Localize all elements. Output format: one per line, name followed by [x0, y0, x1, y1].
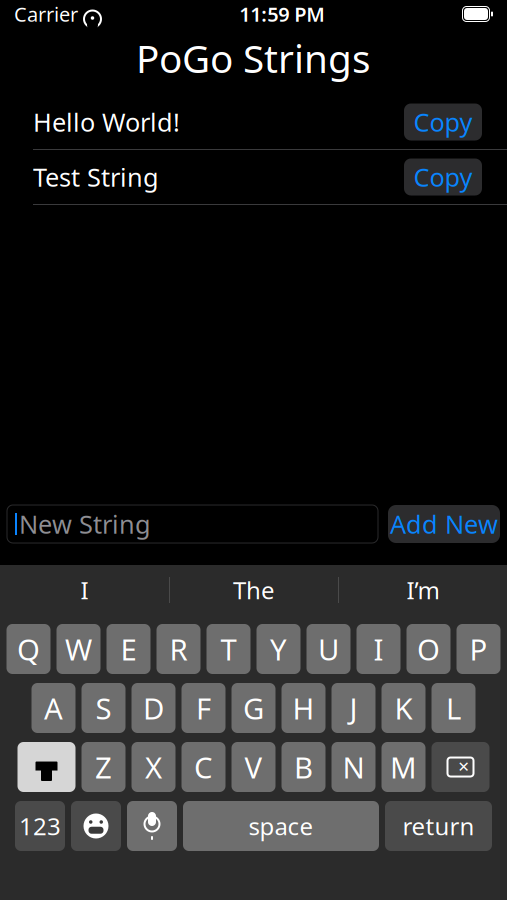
button[interactable]: T: [206, 624, 250, 674]
button[interactable]: P: [456, 624, 500, 674]
button[interactable]: A: [31, 683, 75, 733]
button[interactable]: Copy: [404, 103, 482, 140]
staticText: New String: [19, 507, 151, 541]
staticText: The: [233, 574, 275, 606]
staticText: G: [243, 688, 264, 727]
staticText: 123: [19, 810, 61, 842]
button[interactable]: F: [181, 683, 225, 733]
button[interactable]: Emoji: [71, 801, 121, 851]
staticText: Test String: [33, 160, 159, 194]
button[interactable]: X: [131, 742, 175, 792]
button[interactable]: V: [231, 742, 275, 792]
staticText: O: [417, 629, 440, 668]
button[interactable]: G: [231, 683, 275, 733]
button[interactable]: L: [431, 683, 475, 733]
button[interactable]: Shift: [17, 742, 75, 792]
button[interactable]: I: [0, 565, 169, 615]
button[interactable]: Copy: [404, 158, 482, 195]
staticText: R: [169, 629, 187, 668]
staticText: PoGo Strings: [136, 32, 371, 84]
button[interactable]: K: [381, 683, 425, 733]
staticText: space: [248, 810, 313, 842]
staticText: Copy: [413, 105, 472, 139]
staticText: Add New: [390, 507, 498, 541]
button[interactable]: U: [306, 624, 350, 674]
staticText: M: [390, 747, 417, 786]
button[interactable]: Add New: [388, 505, 500, 543]
staticText: Hello World!: [33, 105, 180, 139]
staticText: return: [402, 810, 474, 842]
button[interactable]: Q: [6, 624, 50, 674]
button[interactable]: J: [331, 683, 375, 733]
button[interactable]: H: [281, 683, 325, 733]
button[interactable]: B: [281, 742, 325, 792]
button[interactable]: Y: [256, 624, 300, 674]
button[interactable]: 123: [15, 801, 65, 851]
button[interactable]: S: [81, 683, 125, 733]
staticText: B: [294, 747, 313, 786]
button[interactable]: Dictation: [127, 801, 177, 851]
button[interactable]: Z: [81, 742, 125, 792]
staticText: X: [145, 747, 162, 786]
button[interactable]: I: [356, 624, 400, 674]
button[interactable]: W: [56, 624, 100, 674]
staticText: C: [194, 747, 213, 786]
staticText: Z: [95, 747, 112, 786]
staticText: J: [349, 688, 357, 727]
staticText: W: [65, 629, 92, 668]
staticText: H: [292, 688, 314, 727]
button[interactable]: The: [170, 565, 338, 615]
staticText: V: [244, 747, 262, 786]
staticText: S: [95, 688, 111, 727]
button[interactable]: E: [106, 624, 150, 674]
staticText: F: [196, 688, 211, 727]
button[interactable]: R: [156, 624, 200, 674]
staticText: P: [469, 629, 487, 668]
staticText: ✕: [457, 759, 469, 775]
button[interactable]: space: [183, 801, 379, 851]
staticText: I: [373, 629, 383, 668]
button[interactable]: Delete: [431, 742, 489, 792]
staticText: Q: [17, 629, 40, 668]
button[interactable]: I’m: [339, 565, 507, 615]
staticText: E: [120, 629, 136, 668]
button[interactable]: C: [181, 742, 225, 792]
button[interactable]: M: [381, 742, 425, 792]
staticText: T: [220, 629, 236, 668]
staticText: Copy: [413, 160, 472, 194]
button[interactable]: return: [385, 801, 492, 851]
button[interactable]: D: [131, 683, 175, 733]
staticText: D: [143, 688, 164, 727]
button[interactable]: N: [331, 742, 375, 792]
staticText: Y: [270, 629, 287, 668]
staticText: Carrier: [14, 1, 78, 27]
staticText: 11:59 PM: [239, 1, 325, 27]
staticText: A: [44, 688, 63, 727]
staticText: L: [446, 688, 461, 727]
staticText: I: [80, 574, 88, 606]
staticText: N: [342, 747, 364, 786]
staticText: U: [318, 629, 339, 668]
staticText: I’m: [406, 574, 439, 606]
button[interactable]: O: [406, 624, 450, 674]
staticText: K: [394, 688, 412, 727]
